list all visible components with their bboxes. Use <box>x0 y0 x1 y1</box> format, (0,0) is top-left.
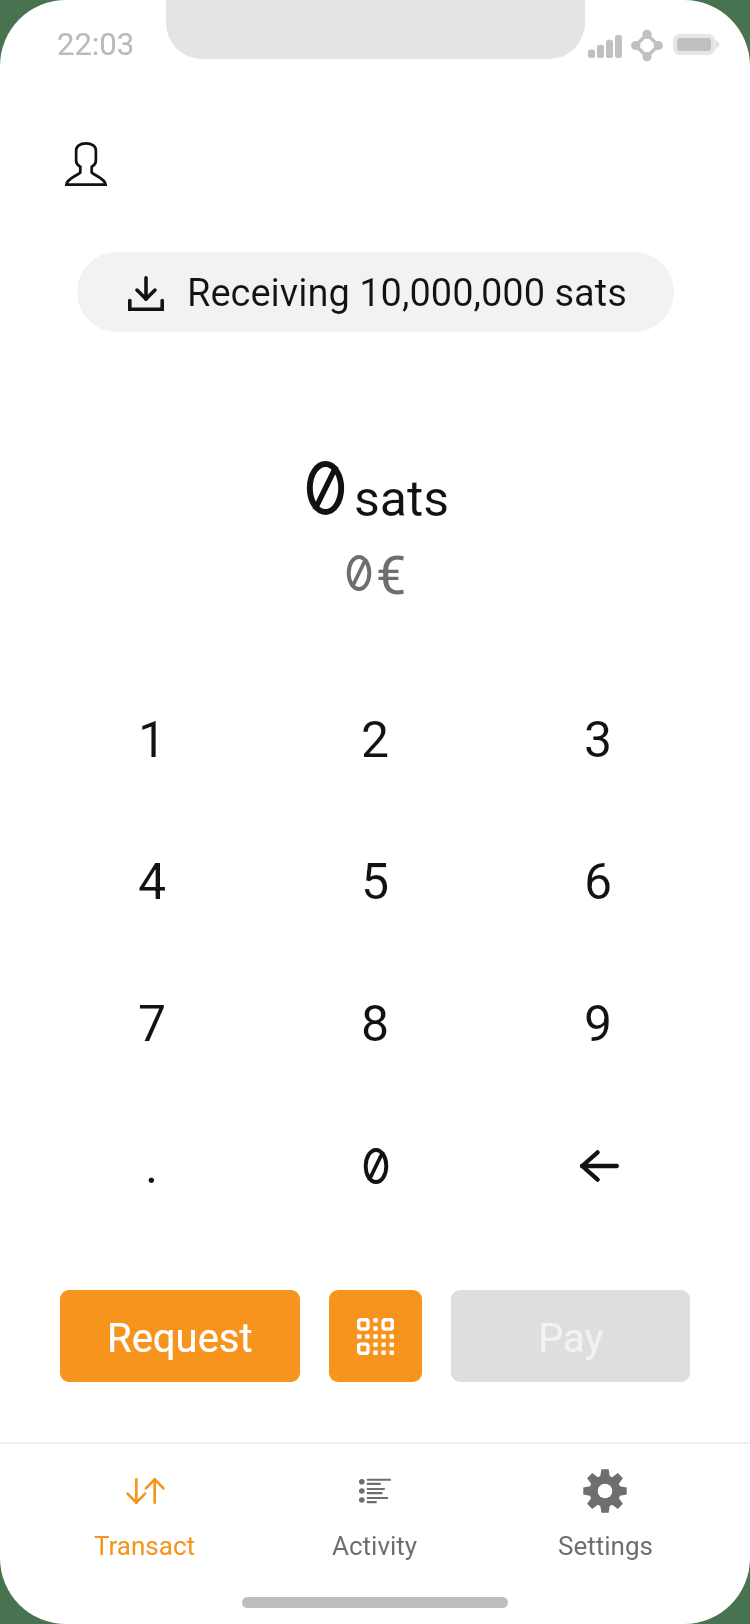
staticText: 8 <box>361 995 390 1054</box>
button[interactable]: Receiving 10,000,000 sats <box>77 252 674 332</box>
staticText: 2 <box>361 711 390 770</box>
staticText: Receiving 10,000,000 sats <box>187 271 627 316</box>
staticText: € <box>376 544 407 607</box>
staticText: Pay <box>538 1315 604 1362</box>
staticText: Transact <box>94 1531 196 1561</box>
staticText: 3 <box>584 711 613 770</box>
staticText: Settings <box>558 1531 653 1561</box>
button[interactable]: 2 <box>264 669 487 811</box>
button[interactable]: . <box>40 1095 264 1237</box>
button[interactable] <box>264 1095 487 1237</box>
staticText: 22:03 <box>57 26 135 62</box>
button[interactable]: 4 <box>40 811 264 953</box>
other: Backspace <box>569 1136 629 1196</box>
button[interactable]: 8 <box>264 953 487 1095</box>
button[interactable]: Profile <box>50 128 122 200</box>
staticText: sats <box>354 470 450 529</box>
button[interactable]: 5 <box>264 811 487 953</box>
button[interactable]: 9 <box>487 953 710 1095</box>
button[interactable]: 6 <box>487 811 710 953</box>
staticText: 4 <box>138 853 167 912</box>
button[interactable]: 1 <box>40 669 264 811</box>
staticText: Request <box>107 1315 253 1362</box>
staticText: 1 <box>138 711 167 770</box>
button[interactable]: Backspace <box>487 1095 710 1237</box>
button[interactable]: 7 <box>40 953 264 1095</box>
staticText: 5 <box>361 853 390 912</box>
staticText: Activity <box>332 1531 418 1561</box>
button[interactable]: Request <box>60 1290 300 1382</box>
button[interactable]: Pay <box>451 1290 690 1382</box>
staticText: . <box>145 1137 159 1196</box>
staticText: 6 <box>584 853 613 912</box>
staticText: 7 <box>138 995 167 1054</box>
button[interactable]: Transact <box>30 1469 260 1579</box>
button[interactable]: 3 <box>487 669 710 811</box>
button[interactable]: Activity <box>260 1469 490 1579</box>
button[interactable]: Settings <box>490 1469 720 1579</box>
button[interactable]: Scan QR code <box>329 1290 422 1382</box>
staticText: 9 <box>584 995 613 1054</box>
